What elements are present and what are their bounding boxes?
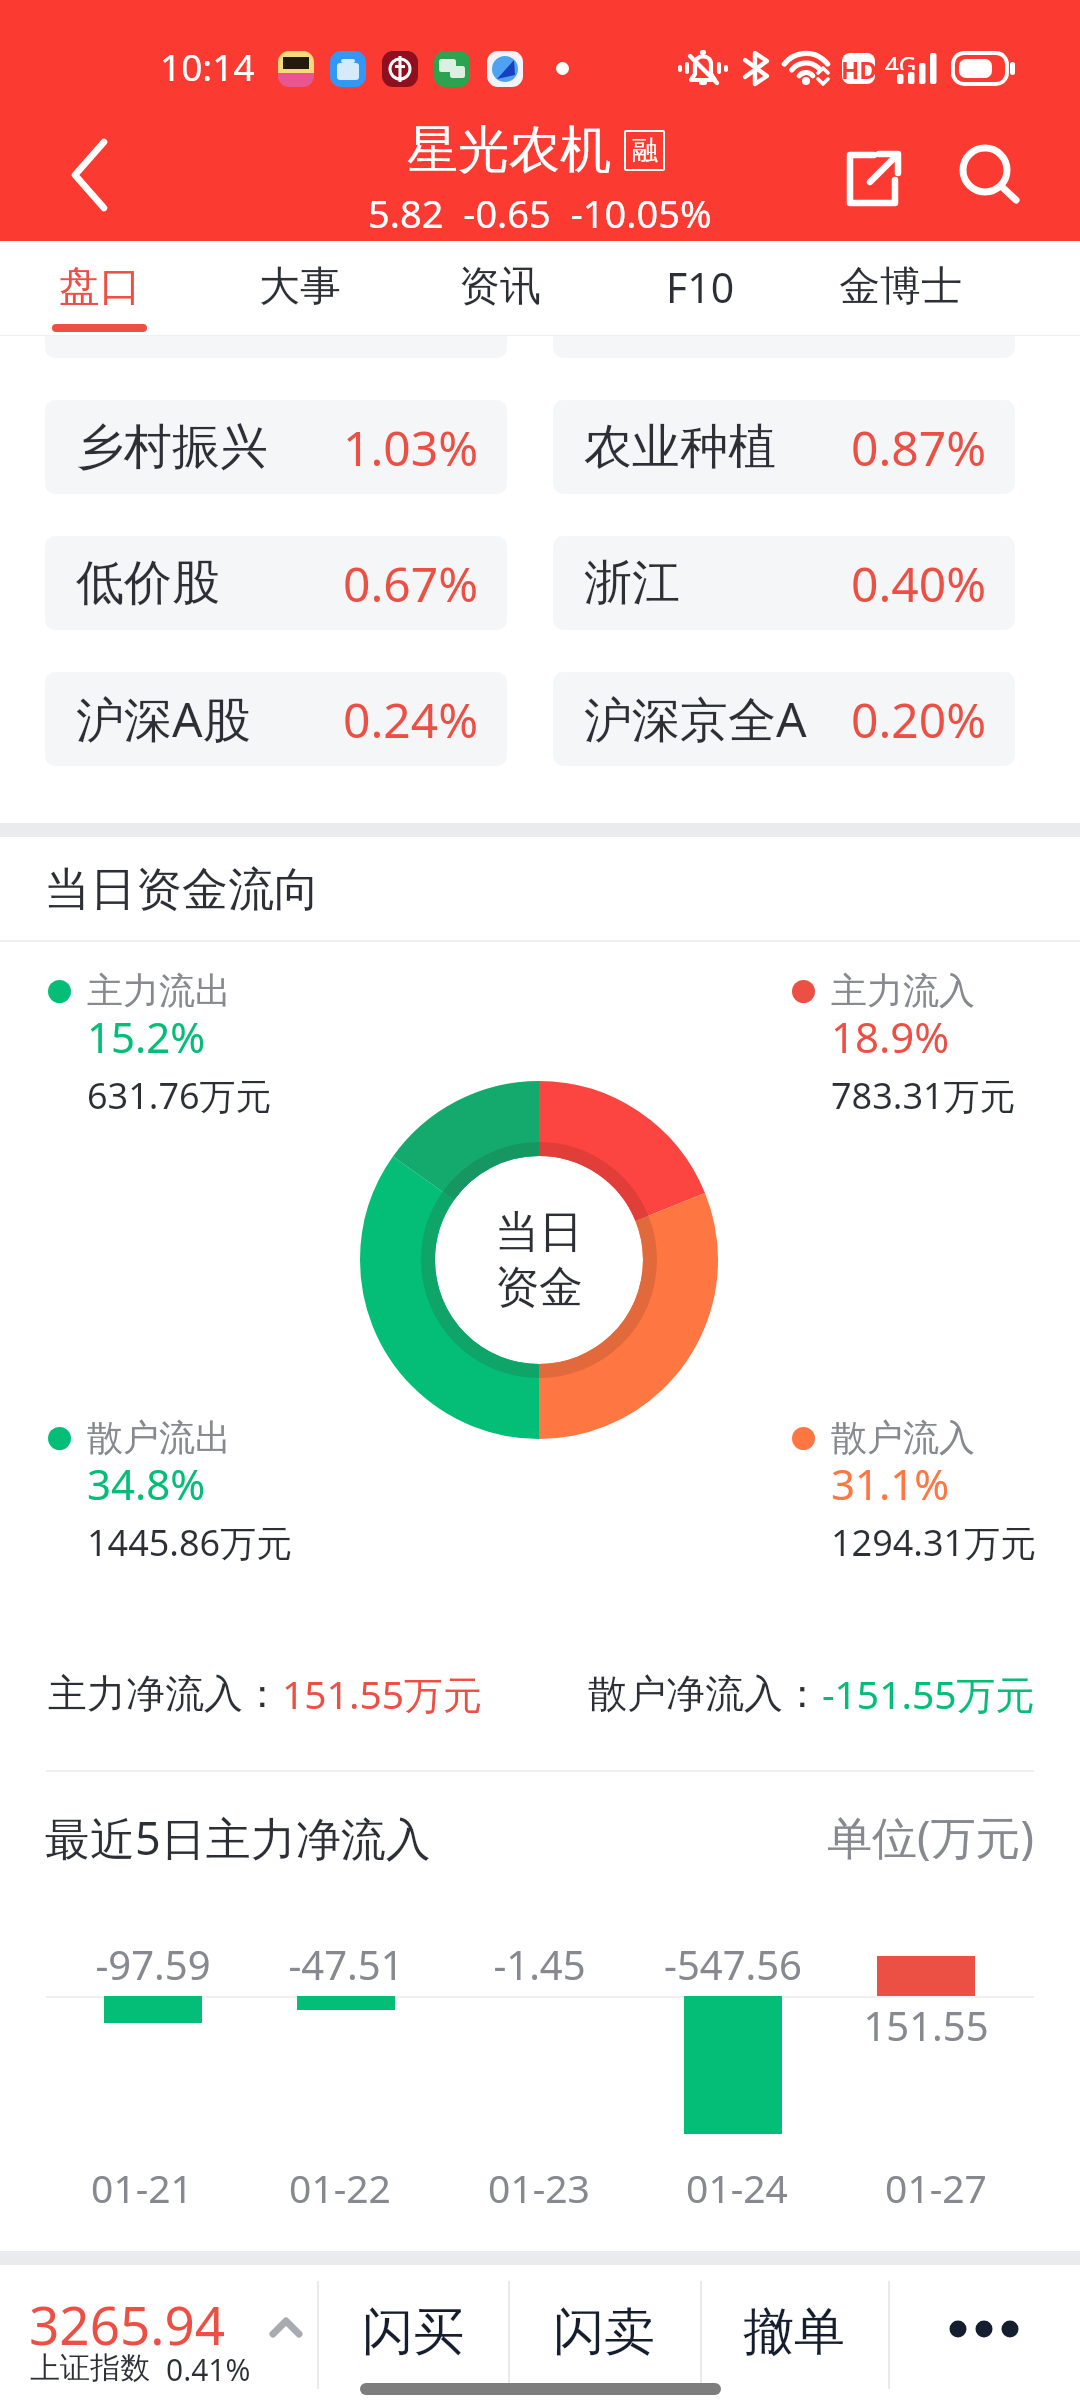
staticText: 盘口	[59, 261, 141, 313]
button[interactable]: F10	[600, 241, 800, 336]
button[interactable]: Back	[40, 135, 120, 215]
button[interactable]: 盘口	[0, 241, 200, 336]
staticText: -47.51	[288, 1937, 404, 1991]
button[interactable]: 乡村振兴	[45, 400, 507, 494]
staticText: 当日资金流向	[44, 861, 320, 919]
staticText: 闪卖	[553, 2300, 655, 2364]
staticText: 金博士	[839, 261, 962, 313]
staticText: 浙江	[584, 553, 680, 613]
staticText: 资金	[495, 1260, 583, 1315]
staticText: 01-22	[289, 2161, 391, 2214]
staticText: 3265.94	[29, 2288, 226, 2360]
staticText: 5.82 -0.65 -10.05%	[368, 187, 712, 239]
staticText: 01-23	[488, 2161, 590, 2214]
staticText: 151.55万元	[282, 1667, 482, 1720]
staticText: 撤单	[743, 2300, 845, 2364]
staticText: 34.8%	[87, 1455, 206, 1512]
staticText: 乡村振兴	[76, 417, 268, 477]
staticText: 151.55	[863, 1998, 989, 2052]
staticText: -97.59	[95, 1937, 211, 1991]
staticText: 低价股	[76, 553, 220, 613]
staticText: 18.9%	[831, 1008, 950, 1065]
staticText: 农业种植	[584, 417, 776, 477]
button[interactable]: 沪深京全A	[553, 672, 1015, 766]
staticText: 631.76万元	[87, 1071, 272, 1120]
staticText: 沪深A股	[76, 686, 251, 752]
staticText: 沪深京全A	[584, 686, 807, 752]
staticText: 0.67%	[343, 551, 479, 616]
staticText: 0.41%	[166, 2349, 251, 2390]
staticText: 上证指数	[30, 2349, 150, 2387]
staticText: 0.87%	[851, 415, 987, 480]
staticText: 0.24%	[343, 687, 479, 752]
staticText: 大事	[259, 261, 341, 313]
staticText: 10:14	[160, 41, 255, 91]
staticText: 783.31万元	[831, 1071, 1016, 1120]
staticText: 散户流入	[831, 1415, 975, 1460]
button[interactable]: Expand	[246, 2296, 326, 2376]
staticText: 1.03%	[343, 415, 479, 480]
button[interactable]: 农业种植	[553, 400, 1015, 494]
button[interactable]: 金博士	[800, 241, 1000, 336]
button[interactable]: 低价股	[45, 536, 507, 630]
staticText: 01-27	[885, 2161, 987, 2214]
staticText: 15.2%	[87, 1008, 206, 1065]
button[interactable]: Share	[831, 136, 911, 216]
staticText: 散户流出	[87, 1415, 231, 1460]
staticText: 31.1%	[831, 1455, 950, 1512]
staticText: 单位(万元)	[827, 1806, 1035, 1867]
staticText: 0.20%	[851, 687, 987, 752]
staticText: -547.56	[664, 1937, 802, 1991]
staticText: 散户净流入：	[588, 1669, 822, 1718]
staticText: 当日	[495, 1205, 583, 1260]
staticText: 主力流出	[87, 968, 231, 1013]
button[interactable]: 撤单	[700, 2265, 888, 2400]
button[interactable]: 沪深A股	[45, 672, 507, 766]
button[interactable]: More	[888, 2265, 1080, 2400]
staticText: 01-21	[91, 2161, 193, 2214]
button[interactable]: 资讯	[400, 241, 600, 336]
staticText: 1294.31万元	[831, 1518, 1037, 1567]
staticText: 1445.86万元	[87, 1518, 293, 1567]
button[interactable]: 浙江	[553, 536, 1015, 630]
staticText: 0.40%	[851, 551, 987, 616]
staticText: 星光农机	[407, 118, 611, 182]
staticText: 主力流入	[831, 968, 975, 1013]
staticText: 闪买	[362, 2300, 464, 2364]
staticText: -1.45	[493, 1937, 586, 1991]
staticText: 资讯	[459, 261, 541, 313]
staticText: -151.55万元	[822, 1667, 1035, 1720]
staticText: 融	[632, 134, 658, 167]
staticText: 4G	[885, 48, 917, 70]
staticText: 主力净流入：	[48, 1669, 282, 1718]
button[interactable]: Search	[945, 130, 1025, 210]
button[interactable]: 大事	[200, 241, 400, 336]
staticText: 01-24	[686, 2161, 788, 2214]
button[interactable]: 闪买	[317, 2265, 508, 2400]
staticText: F10	[666, 259, 735, 315]
staticText: HD	[841, 53, 877, 84]
staticText: 最近5日主力净流入	[45, 1807, 431, 1868]
button[interactable]: 闪卖	[508, 2265, 700, 2400]
